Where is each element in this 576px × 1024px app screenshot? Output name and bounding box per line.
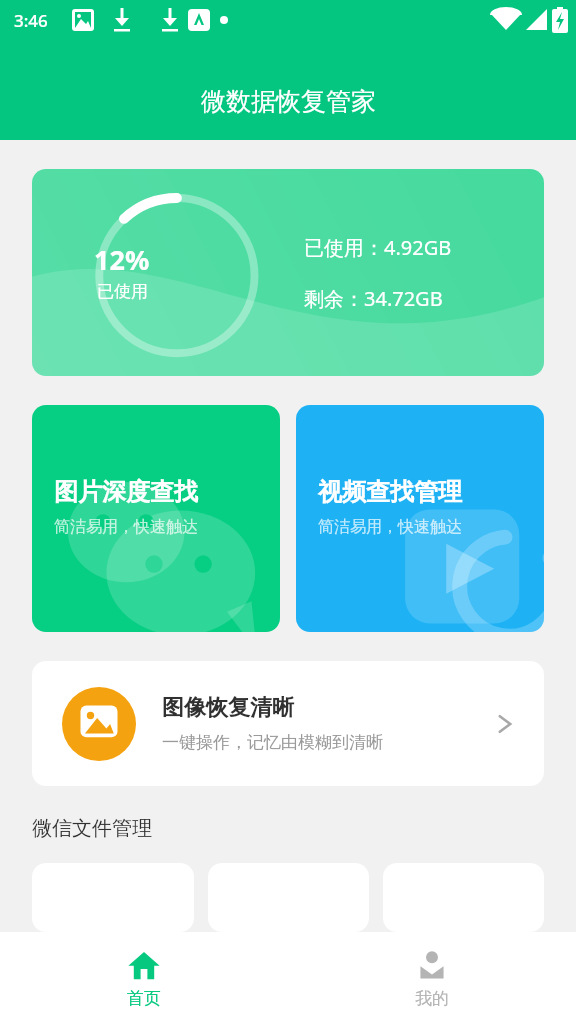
- button[interactable]: 图像恢复清晰: [32, 661, 544, 786]
- staticText: 简洁易用，快速触达: [54, 517, 198, 537]
- staticText: 12%: [94, 241, 150, 278]
- staticText: 简洁易用，快速触达: [318, 517, 462, 537]
- button[interactable]: 视频查找管理: [296, 405, 544, 632]
- staticText: 一键操作，记忆由模糊到清晰: [162, 732, 383, 753]
- button[interactable]: 图片深度查找: [32, 405, 280, 632]
- staticText: 我的: [415, 988, 449, 1009]
- staticText: 视频查找管理: [318, 477, 462, 507]
- button[interactable]: 12%: [32, 169, 544, 376]
- staticText: 首页: [127, 988, 161, 1009]
- staticText: 微信文件管理: [32, 816, 152, 841]
- staticText: 图片深度查找: [54, 477, 198, 507]
- button[interactable]: 首页: [0, 932, 288, 1024]
- button[interactable]: 我的: [288, 932, 576, 1024]
- staticText: 剩余：34.72GB: [304, 285, 443, 312]
- staticText: 已使用: [97, 281, 148, 302]
- staticText: 微数据恢复管家: [201, 86, 376, 117]
- staticText: 图像恢复清晰: [162, 694, 294, 722]
- staticText: 已使用：4.92GB: [304, 234, 452, 261]
- staticText: 3:46: [14, 9, 48, 32]
